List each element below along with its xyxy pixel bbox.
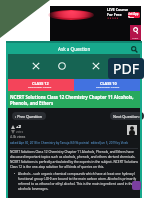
staticText: NCERT Solutions Class 12 Chemistry Chapt… [10, 94, 134, 106]
button[interactable]: Recent [54, 58, 70, 74]
button[interactable]: Next Question › [110, 112, 144, 120]
button[interactable]: Get App Now [128, 12, 140, 18]
button[interactable]: LIVE Course [50, 6, 141, 41]
staticText: CLASS 12 [32, 81, 49, 86]
button[interactable]: ‹ Prev Question [12, 112, 46, 120]
staticText: PDF [113, 59, 139, 78]
button[interactable]: Ask a question [28, 58, 44, 74]
staticText: asked Apr 30, 2018 in Chemistry by Tanuj… [10, 141, 129, 145]
staticText: votes [16, 130, 24, 134]
button[interactable]: Ask a Question [6, 43, 142, 54]
staticText: NCERT Solutions Class 12 Chemistry Chapt… [10, 150, 139, 169]
staticText: Login [132, 36, 139, 39]
button[interactable]: CLASS 10 [74, 79, 142, 91]
button[interactable]: More [118, 58, 134, 74]
button[interactable]: User avatar [127, 125, 137, 135]
staticText: • [14, 172, 16, 176]
staticText: ‹ Prev Question [15, 114, 43, 119]
button[interactable]: Search [130, 45, 138, 53]
button[interactable]: Login [130, 25, 141, 40]
staticText: +2 [16, 124, 21, 130]
staticText: For Free [107, 12, 122, 17]
staticText: Ask a Question [58, 46, 91, 52]
staticText: CLASS 10 [100, 81, 117, 86]
staticText: 4.3k views [10, 135, 26, 139]
staticText: Alcohols - such organic chemical compoun… [18, 172, 139, 191]
staticText: Next Question › [113, 114, 141, 119]
button[interactable]: Download PDF [108, 58, 144, 79]
button[interactable]: Chat [132, 181, 141, 190]
button[interactable]: Tools [88, 58, 104, 74]
staticText: FOUNDATION COURSE [96, 86, 120, 89]
staticText: FOUNDATION COURSE [28, 86, 52, 89]
staticText: ★★★★★ [107, 17, 119, 20]
staticText: LIVE Course [107, 7, 129, 12]
button[interactable]: CLASS 12 [6, 79, 74, 91]
staticText: Get App Now [128, 12, 140, 18]
